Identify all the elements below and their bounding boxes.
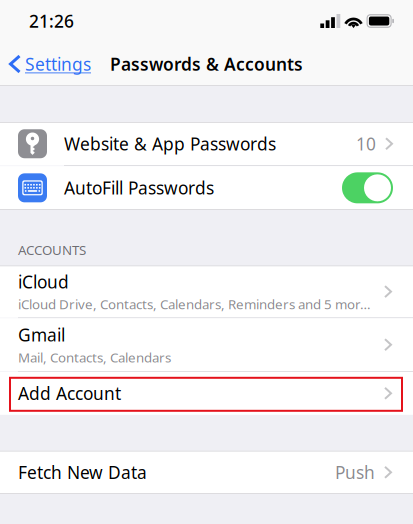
staticText: Mail, Contacts, Calendars <box>18 348 171 366</box>
staticText: Passwords & Accounts <box>110 52 303 75</box>
button[interactable]: Add Account <box>0 372 413 415</box>
staticText: Website & App Passwords <box>64 132 276 155</box>
staticText: iCloud <box>18 270 69 293</box>
button[interactable]: iCloud <box>0 266 413 318</box>
staticText: Gmail <box>18 323 65 346</box>
button[interactable]: Settings <box>0 42 97 86</box>
button[interactable]: AutoFill Passwords <box>0 166 413 210</box>
staticText: Push <box>335 461 375 484</box>
staticText: Fetch New Data <box>18 461 147 484</box>
staticText: ACCOUNTS <box>18 241 86 259</box>
staticText: AutoFill Passwords <box>64 176 214 199</box>
button[interactable]: Website & App Passwords <box>0 122 413 165</box>
staticText: iCloud Drive, Contacts, Calendars, Remin… <box>18 295 376 313</box>
staticText: Add Account <box>18 382 121 405</box>
staticText: Settings <box>25 52 91 75</box>
staticText: 21:26 <box>29 9 74 32</box>
button[interactable]: Gmail <box>0 318 413 371</box>
button[interactable]: Fetch New Data <box>0 451 413 494</box>
staticText: 10 <box>356 132 376 155</box>
